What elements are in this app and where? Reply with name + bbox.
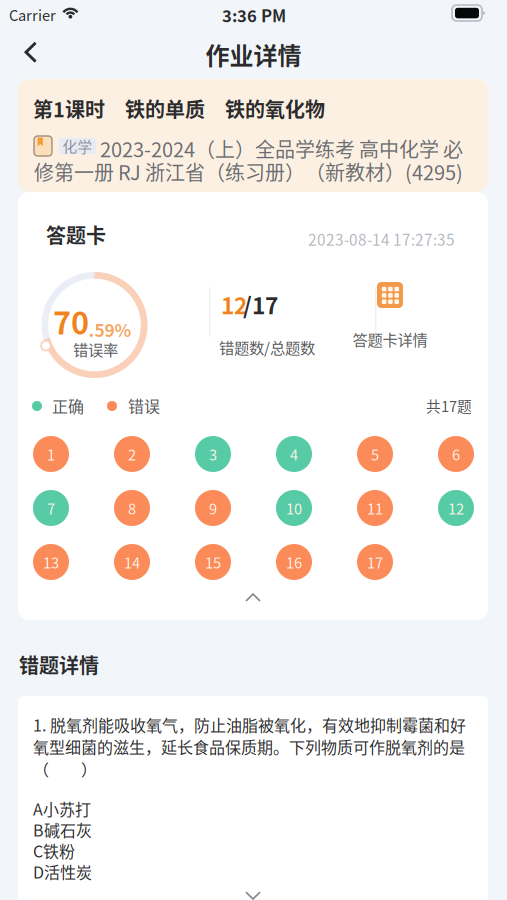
- button[interactable]: 14: [114, 544, 150, 580]
- staticText: 1: [47, 443, 55, 465]
- button[interactable]: 6: [438, 436, 474, 472]
- button[interactable]: 1: [33, 436, 69, 472]
- staticText: 2: [128, 443, 136, 465]
- staticText: 第1课时 铁的单质 铁的氧化物: [33, 94, 325, 123]
- staticText: 3:36 PM: [222, 3, 286, 27]
- staticText: 答题卡: [46, 220, 106, 249]
- button[interactable]: Collapse: [221, 581, 285, 615]
- staticText: 错题数/总题数: [219, 336, 315, 358]
- staticText: 化学: [62, 135, 92, 157]
- staticText: 16: [286, 551, 302, 573]
- staticText: 9: [209, 497, 217, 519]
- staticText: 10: [286, 497, 302, 519]
- staticText: 12: [448, 497, 464, 519]
- button[interactable]: 答题卡详情: [330, 282, 450, 352]
- staticText: 5: [371, 443, 379, 465]
- staticText: 作业详情: [205, 37, 301, 72]
- button[interactable]: 11: [357, 490, 393, 526]
- staticText: 氧型细菌的滋生，延长食品保质期。下列物质可作脱氧剂的是: [33, 735, 465, 758]
- button[interactable]: 17: [357, 544, 393, 580]
- staticText: 15: [205, 551, 221, 573]
- staticText: 2023-08-14 17:27:35: [308, 228, 455, 250]
- staticText: 7: [47, 497, 55, 519]
- staticText: 2023-2024（上）全品学练考 高中化学 必: [100, 134, 463, 163]
- button[interactable]: 2: [114, 436, 150, 472]
- staticText: 修第一册 RJ 浙江省（练习册）（新教材）(4295): [34, 157, 463, 186]
- staticText: 70: [53, 299, 89, 343]
- staticText: 共17题: [426, 395, 472, 416]
- button[interactable]: 3: [195, 436, 231, 472]
- staticText: 13: [43, 551, 59, 573]
- staticText: D活性炭: [33, 860, 92, 883]
- staticText: 错误率: [73, 338, 118, 360]
- staticText: 正确: [52, 394, 84, 417]
- staticText: 错误: [128, 394, 160, 417]
- button[interactable]: 10: [276, 490, 312, 526]
- button[interactable]: 15: [195, 544, 231, 580]
- button[interactable]: 9: [195, 490, 231, 526]
- staticText: （ ）: [33, 757, 97, 780]
- staticText: 6: [452, 443, 460, 465]
- staticText: 错题详情: [19, 650, 99, 679]
- staticText: /17: [243, 288, 278, 321]
- staticText: 1. 脱氧剂能吸收氧气，防止油脂被氧化，有效地抑制霉菌和好: [33, 713, 466, 736]
- button[interactable]: Back: [13, 30, 59, 76]
- button[interactable]: 12: [438, 490, 474, 526]
- staticText: 3: [209, 443, 217, 465]
- staticText: Carrier: [9, 4, 56, 25]
- staticText: 4: [290, 443, 298, 465]
- staticText: 17: [367, 551, 383, 573]
- staticText: C铁粉: [33, 839, 75, 862]
- staticText: B碱石灰: [33, 818, 92, 841]
- staticText: 12: [221, 288, 247, 321]
- button[interactable]: 13: [33, 544, 69, 580]
- button[interactable]: 5: [357, 436, 393, 472]
- button[interactable]: 4: [276, 436, 312, 472]
- staticText: 答题卡详情: [352, 328, 427, 350]
- button[interactable]: Expand: [221, 881, 285, 900]
- button[interactable]: 7: [33, 490, 69, 526]
- staticText: A小苏打: [33, 797, 91, 820]
- staticText: 8: [128, 497, 136, 519]
- button[interactable]: 8: [114, 490, 150, 526]
- staticText: 14: [124, 551, 140, 573]
- staticText: .59%: [88, 317, 131, 342]
- button[interactable]: 16: [276, 544, 312, 580]
- staticText: 11: [367, 497, 383, 519]
